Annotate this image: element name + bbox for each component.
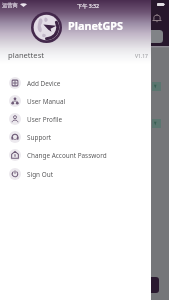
button[interactable]: Add Device (0, 74, 151, 92)
staticText: Support (27, 133, 52, 142)
staticText: 下午 3:32 (77, 2, 100, 9)
staticText: planettest (8, 50, 45, 60)
staticText: Add Device (27, 79, 61, 88)
staticText: 运营商 (2, 2, 18, 9)
button[interactable]: User Profile (0, 110, 151, 128)
button[interactable]: Notifications (150, 11, 164, 25)
staticText: Sign Out (27, 170, 53, 179)
staticText: V1.17 (135, 53, 148, 60)
staticText: User Profile (27, 115, 62, 124)
staticText: User Manual (27, 97, 66, 106)
button[interactable]: planettest (0, 46, 151, 63)
button[interactable]: Sign Out (0, 165, 151, 183)
button[interactable]: User Manual (0, 92, 151, 110)
staticText: Change Account Password (27, 151, 107, 160)
staticText: PlanetGPS (68, 18, 124, 33)
button[interactable]: Add device (146, 277, 159, 293)
button[interactable]: Search (134, 30, 163, 43)
button[interactable]: Change Account Password (0, 146, 151, 164)
button[interactable]: Support (0, 128, 151, 146)
